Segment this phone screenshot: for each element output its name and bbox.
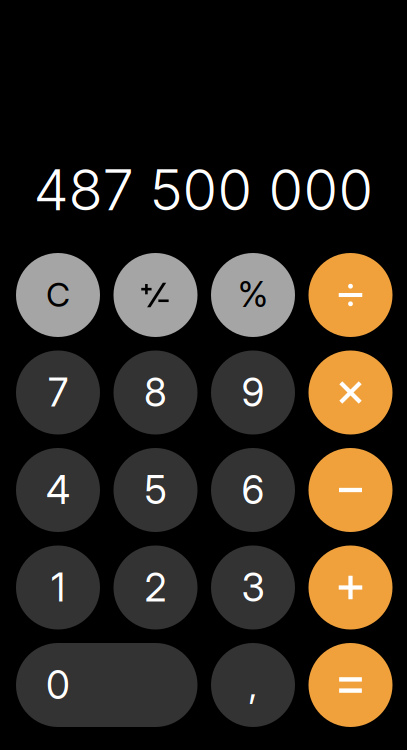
button[interactable]: Clear [16,253,100,337]
button[interactable]: 9 [211,350,295,434]
button[interactable]: Decimal separator [211,643,295,727]
button[interactable]: Toggle sign [113,253,197,337]
button[interactable]: Divide [308,253,392,337]
button[interactable]: 6 [211,448,295,532]
staticText: 7 [48,369,68,416]
staticText: 5 [144,467,166,513]
staticText: 3 [241,564,264,611]
staticText: 9 [241,369,264,416]
button[interactable]: 3 [211,545,295,629]
button[interactable]: 5 [113,448,197,532]
button[interactable]: 0 [16,643,197,727]
staticText: 487 500 000 [33,156,373,224]
button[interactable]: Minus [308,448,392,532]
staticText: , [248,661,257,707]
button[interactable]: 2 [113,545,197,629]
staticText: 8 [144,369,167,416]
staticText: 2 [144,564,166,611]
staticText: 4 [46,467,70,513]
staticText: 0 [46,662,70,708]
button[interactable]: Equals [308,643,392,727]
button[interactable]: 1 [16,545,100,629]
button[interactable]: 7 [16,350,100,434]
staticText: % [237,273,268,315]
button[interactable]: Plus [308,545,392,629]
button[interactable]: Percent [211,253,295,337]
staticText: C [46,274,70,315]
button[interactable]: 8 [113,350,197,434]
button[interactable]: 4 [16,448,100,532]
button[interactable]: Multiply [308,350,392,434]
staticText: 6 [241,467,264,513]
staticText: 1 [51,564,65,611]
